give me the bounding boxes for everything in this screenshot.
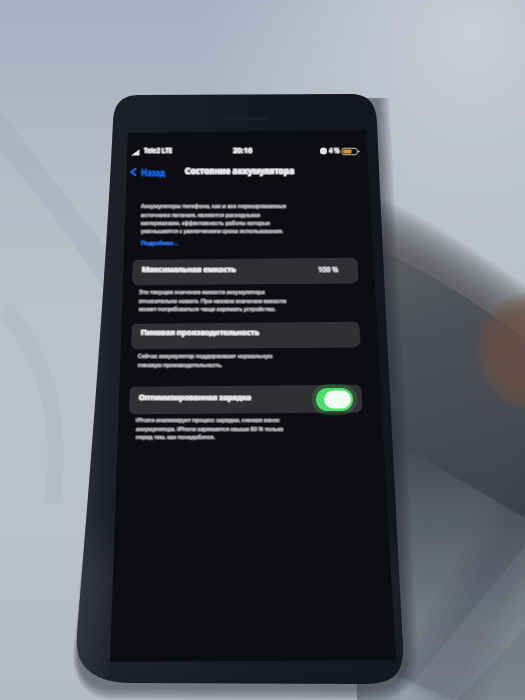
staticText: 4 % [328,147,339,155]
staticText: Tele2 LTE [144,145,173,154]
staticText: Tele2 LTE [144,146,173,155]
staticText: Аккумуляторы телефона, как и все перезар… [142,201,288,233]
staticText: Сейчас аккумулятор поддерживает нормальн… [138,352,273,368]
staticText: Tele2 LTE [145,147,174,156]
staticText: Состояние аккумулятора [185,165,295,176]
staticText: Это текущее значение емкости аккумулятор… [138,289,286,313]
staticText: 4 % [329,147,340,155]
staticText: iPhone анализирует процесс зарядки, сниж… [136,416,284,440]
staticText: 4 % [329,146,340,154]
staticText: Сейчас аккумулятор поддерживает нормальн… [137,353,272,369]
button[interactable] [130,386,362,413]
staticText: Подробнее... [141,238,178,246]
staticText: Максимальная емкость [142,263,236,274]
staticText: Назад [142,166,166,177]
staticText: Назад [141,167,165,178]
staticText: Сейчас аккумулятор поддерживает нормальн… [138,353,273,369]
staticText: Подробнее... [142,239,179,247]
staticText: 100 % [319,264,340,274]
staticText: 100 % [317,264,338,274]
staticText: Сейчас аккумулятор поддерживает нормальн… [137,352,272,368]
staticText: Это текущее значение емкости аккумулятор… [139,287,287,311]
staticText: Назад [140,167,164,178]
staticText: Оптимизированная зарядка [140,391,252,402]
staticText: Максимальная емкость [142,264,236,275]
staticText: Аккумуляторы телефона, как и все перезар… [142,202,288,234]
staticText: Аккумуляторы телефона, как и все перезар… [140,202,286,234]
staticText: Это текущее значение емкости аккумулятор… [139,289,287,313]
staticText: 20:16 [233,145,253,155]
staticText: Это текущее значение емкости аккумулятор… [138,287,286,311]
staticText: 100 % [317,265,338,275]
staticText: Максимальная емкость [143,265,237,276]
staticText: 4 % [328,146,339,154]
staticText: Назад [141,166,165,177]
staticText: Максимальная емкость [141,265,235,276]
staticText: Сейчас аккумулятор поддерживает нормальн… [139,353,274,369]
staticText: Tele2 LTE [143,147,172,156]
staticText: Пиковая производительность [140,326,259,337]
staticText: Состояние аккумулятора [184,164,294,175]
staticText: 100 % [317,263,338,273]
staticText: Это текущее значение емкости аккумулятор… [138,288,286,312]
staticText: 4 % [330,145,341,153]
staticText: Tele2 LTE [144,147,173,156]
staticText: Максимальная емкость [141,264,235,275]
staticText: Подробнее... [141,239,178,247]
staticText: Подробнее... [140,240,177,248]
staticText: 20:16 [234,146,254,156]
staticText: Максимальная емкость [142,265,236,276]
button[interactable] [132,322,360,348]
staticText: iPhone анализирует процесс зарядки, сниж… [135,417,283,441]
button[interactable] [133,258,358,284]
staticText: Пиковая производительность [142,328,261,339]
staticText: Подробнее... [141,240,178,248]
staticText: Это текущее значение емкости аккумулятор… [140,288,288,312]
staticText: Оптимизированная зарядка [139,392,251,403]
staticText: Tele2 LTE [143,146,172,155]
staticText: Назад [140,166,164,177]
staticText: Состояние аккумулятора [186,166,296,177]
staticText: Это текущее значение емкости аккумулятор… [139,288,287,312]
staticText: 20:16 [232,144,252,154]
staticText: Пиковая производительность [140,328,259,339]
staticText: Tele2 LTE [145,146,174,155]
staticText: Максимальная емкость [141,263,235,274]
staticText: Аккумуляторы телефона, как и все перезар… [142,203,288,235]
staticText: 20:16 [234,144,254,154]
staticText: Состояние аккумулятора [186,165,296,176]
staticText: 20:16 [233,146,253,156]
staticText: Подробнее... [142,240,179,248]
staticText: Подробнее... [140,238,177,246]
staticText: Аккумуляторы телефона, как и все перезар… [141,201,287,233]
staticText: Пиковая производительность [140,327,259,338]
staticText: 4 % [330,146,341,154]
staticText: Аккумуляторы телефона, как и все перезар… [140,203,286,235]
staticText: Оптимизированная зарядка [140,392,252,403]
staticText: Сейчас аккумулятор поддерживает нормальн… [137,351,272,367]
staticText: Оптимизированная зарядка [139,391,251,402]
staticText: iPhone анализирует процесс зарядки, сниж… [137,417,285,441]
staticText: 100 % [319,265,340,275]
staticText: Состояние аккумулятора [185,164,295,175]
staticText: Аккумуляторы телефона, как и все перезар… [141,203,287,235]
button[interactable]: Назад [129,164,181,180]
button[interactable] [141,239,187,249]
staticText: iPhone анализирует процесс зарядки, сниж… [135,415,283,439]
staticText: Пиковая производительность [141,327,260,338]
staticText: Оптимизированная зарядка [138,393,250,404]
staticText: Состояние аккумулятора [186,164,296,175]
staticText: Подробнее... [142,238,179,246]
staticText: Подробнее... [140,239,177,247]
staticText: 20:16 [233,144,253,154]
staticText: 4 % [330,147,341,155]
staticText: Пиковая производительность [142,326,261,337]
staticText: Пиковая производительность [141,326,260,337]
staticText: Оптимизированная зарядка [138,392,250,403]
staticText: Назад [142,168,166,179]
staticText: Это текущее значение емкости аккумулятор… [140,289,288,313]
staticText: Сейчас аккумулятор поддерживает нормальн… [139,351,274,367]
staticText: Оптимизированная зарядка [138,391,250,402]
staticText: iPhone анализирует процесс зарядки, сниж… [137,416,285,440]
staticText: iPhone анализирует процесс зарядки, сниж… [137,415,285,439]
